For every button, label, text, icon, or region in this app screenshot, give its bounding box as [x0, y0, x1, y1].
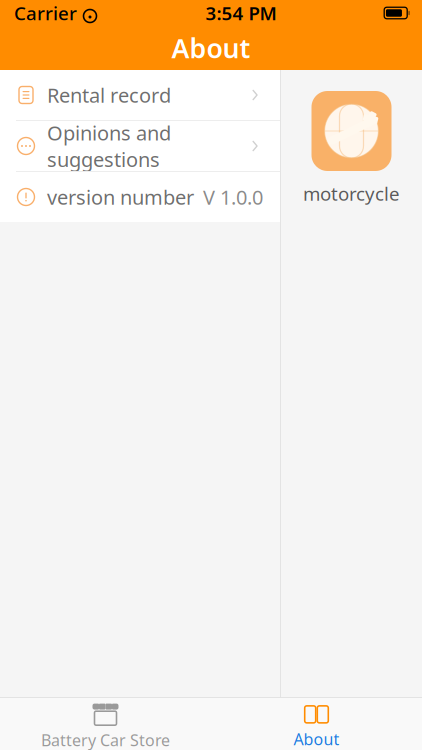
staticText: Opinions and suggestions — [47, 119, 171, 172]
button[interactable]: Battery Car Store — [0, 697, 211, 750]
staticText: Carrier — [14, 1, 77, 25]
staticText: About — [293, 728, 339, 750]
staticText: About — [171, 30, 250, 66]
button[interactable]: motorcycle — [303, 91, 400, 206]
staticText: 3:54 PM — [206, 1, 277, 25]
staticText: Battery Car Store — [41, 729, 170, 750]
staticText: version number — [47, 184, 194, 210]
button[interactable]: version number — [0, 172, 280, 222]
staticText: Rental record — [47, 82, 171, 108]
button[interactable]: Opinions and suggestions — [0, 121, 280, 172]
button[interactable]: Rental record — [0, 70, 280, 121]
staticText: V 1.0.0 — [203, 184, 263, 210]
button[interactable]: About — [211, 698, 422, 750]
staticText: motorcycle — [303, 181, 400, 206]
